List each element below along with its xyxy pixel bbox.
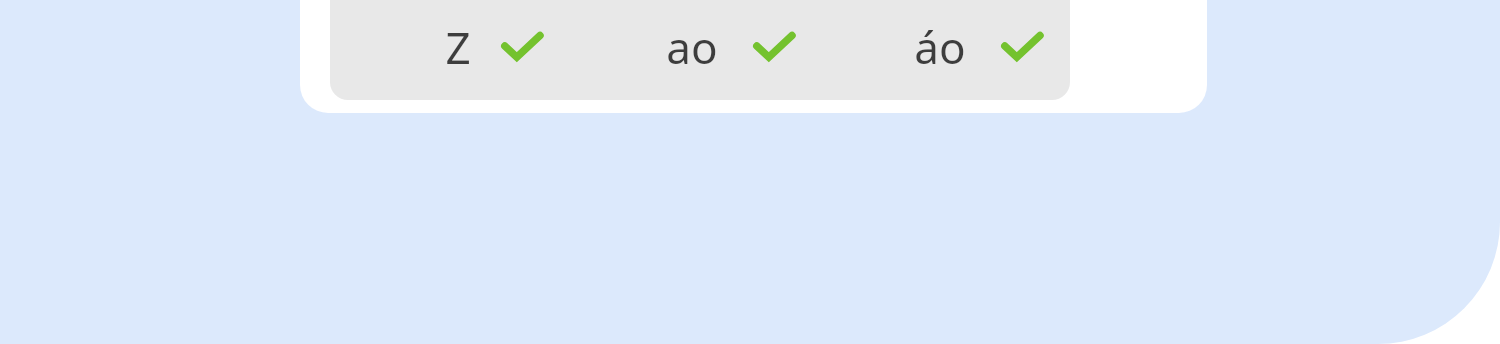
button[interactable]: ao bbox=[654, 17, 794, 77]
other: Correct bbox=[754, 32, 794, 62]
other: Correct bbox=[502, 32, 542, 62]
button[interactable]: Z bbox=[438, 17, 542, 77]
staticText: Z bbox=[438, 17, 478, 77]
staticText: áo bbox=[902, 17, 978, 77]
button[interactable]: áo bbox=[902, 17, 1042, 77]
other: Correct bbox=[1002, 32, 1042, 62]
staticText: ao bbox=[654, 17, 730, 77]
button[interactable]: Z bbox=[330, 0, 1070, 100]
